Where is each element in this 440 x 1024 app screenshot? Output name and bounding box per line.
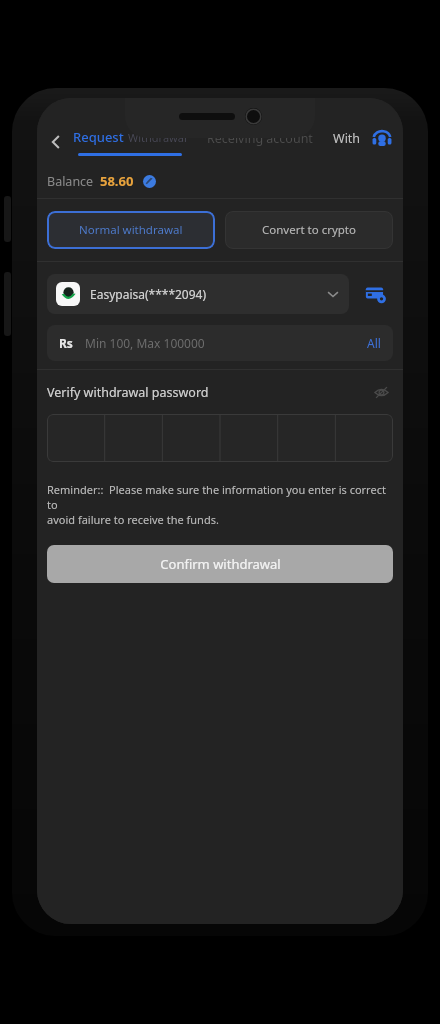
button[interactable]: Customer support [365,122,399,156]
staticText: 58.60 [100,172,134,190]
button[interactable]: Withdrawal password entry [47,414,393,462]
staticText: Convert to crypto [262,222,356,238]
button[interactable]: Request [73,120,187,164]
staticText: avoid failure to receive the funds. [47,512,219,527]
staticText: Request [73,128,128,146]
button[interactable]: Manage payment cards [359,277,393,311]
button[interactable]: With [333,120,361,156]
button[interactable]: Back [39,125,73,159]
button[interactable]: Convert to crypto [225,211,393,249]
button[interactable]: Confirm withdrawal [47,545,393,583]
staticText: Receiving account [207,130,313,147]
staticText: Min 100, Max 100000 [85,335,205,351]
button[interactable]: Normal withdrawal [47,211,215,249]
button[interactable]: Rs [47,325,393,361]
staticText: With [333,130,361,147]
staticText: All [367,335,381,351]
button[interactable]: Toggle password visibility [369,380,393,404]
staticText: Verify withdrawal password [47,384,209,401]
staticText: Normal withdrawal [79,222,183,238]
staticText: Withdrawal [128,130,187,145]
staticText: Rs [59,335,73,351]
button[interactable]: Refresh balance [139,171,159,191]
staticText: Reminder:: Please make sure the informat… [47,482,393,512]
button[interactable]: All [367,335,381,351]
button[interactable]: Easypaisa(****2094) [47,274,349,314]
staticText: Balance [47,173,94,190]
button[interactable]: Receiving account [207,120,313,156]
staticText: Confirm withdrawal [160,555,281,573]
staticText: Easypaisa(****2094) [90,286,207,302]
